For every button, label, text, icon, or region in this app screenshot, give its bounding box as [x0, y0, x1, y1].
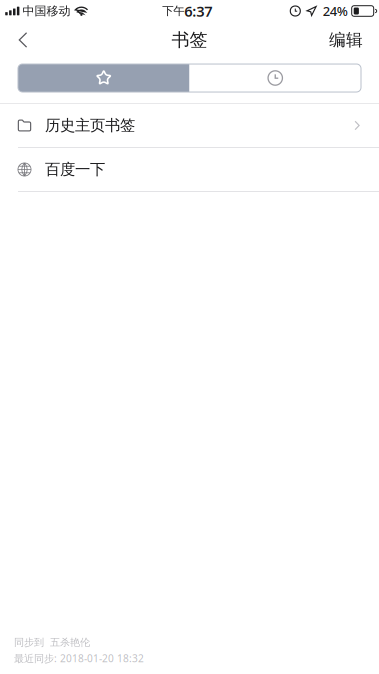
- staticText: 历史主页书签: [45, 116, 135, 135]
- staticText: 同步到 五杀艳伦: [14, 636, 90, 648]
- staticText: 下午: [162, 4, 184, 18]
- staticText: 最近同步: 2018-01-20 18:32: [14, 651, 144, 665]
- staticText: 书签: [171, 29, 207, 51]
- staticText: 中国移动: [23, 4, 71, 18]
- button[interactable]: 返回: [0, 22, 46, 58]
- button[interactable]: 百度一下: [0, 148, 379, 191]
- staticText: 编辑: [329, 30, 363, 50]
- button[interactable]: 历史: [189, 64, 361, 92]
- staticText: 6:37: [184, 1, 212, 21]
- button[interactable]: 书签: [18, 64, 189, 92]
- staticText: 百度一下: [45, 160, 105, 179]
- button[interactable]: 历史主页书签: [0, 104, 379, 147]
- button[interactable]: 编辑: [329, 22, 379, 58]
- staticText: 24%: [323, 2, 348, 20]
